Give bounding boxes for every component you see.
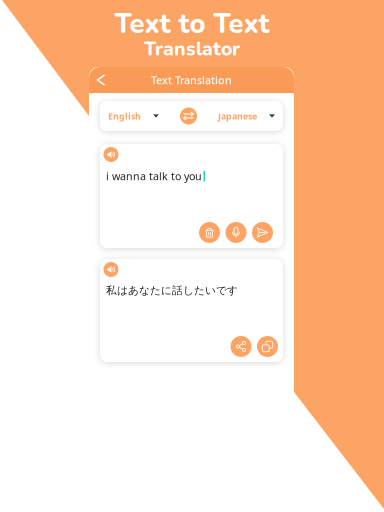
button[interactable]: Play audio xyxy=(103,147,118,162)
button[interactable]: Japanese xyxy=(218,101,275,131)
button[interactable]: Copy xyxy=(257,336,278,357)
staticText: 私はあなたに話したいです xyxy=(106,284,238,297)
staticText: Text Translation xyxy=(151,73,232,87)
button[interactable]: English xyxy=(108,101,159,131)
staticText: i wanna talk to you xyxy=(106,169,202,183)
staticText: Text to Text xyxy=(114,5,269,43)
button[interactable]: Swap languages xyxy=(180,107,197,124)
button[interactable]: Delete xyxy=(199,222,220,243)
button[interactable]: Play audio xyxy=(103,262,118,277)
staticText: Japanese xyxy=(218,110,257,122)
button[interactable]: Share xyxy=(230,336,251,357)
button[interactable]: Voice input xyxy=(225,222,246,243)
staticText: Translator xyxy=(144,36,240,62)
staticText: English xyxy=(108,110,141,122)
button[interactable]: Translate xyxy=(252,222,273,243)
button[interactable]: Back xyxy=(89,67,113,93)
